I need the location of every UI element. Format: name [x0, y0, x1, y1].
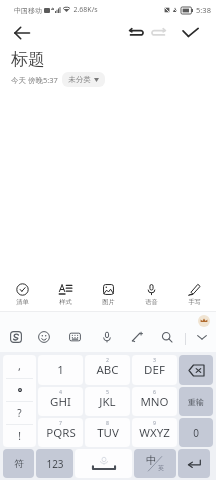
staticText: 样式	[59, 298, 72, 306]
staticText: JKL	[99, 394, 116, 410]
staticText: 9	[153, 419, 156, 426]
button[interactable]: Voice input	[96, 326, 118, 348]
button[interactable]: 中	[134, 449, 176, 478]
button[interactable]: Search	[156, 326, 178, 348]
button[interactable]: ,	[3, 355, 36, 378]
staticText: 重输	[188, 397, 204, 407]
staticText: 5	[106, 388, 109, 395]
staticText: TUV	[97, 425, 119, 441]
staticText: 语音	[145, 298, 158, 306]
staticText: !	[18, 429, 21, 443]
button[interactable]: 清单	[0, 270, 44, 311]
staticText: ?	[17, 406, 22, 420]
button[interactable]: 9	[132, 418, 177, 447]
staticText: 5:38	[196, 5, 211, 15]
button[interactable]: 123	[36, 449, 73, 478]
button[interactable]: Sogou input	[5, 326, 27, 348]
staticText: DEF	[144, 362, 165, 378]
staticText: 7	[59, 419, 62, 426]
button[interactable]	[179, 355, 213, 385]
staticText: ABC	[96, 362, 119, 378]
button[interactable]: 语音	[130, 270, 173, 311]
staticText: 8	[106, 419, 109, 426]
staticText: MNO	[140, 394, 169, 410]
button[interactable]: Emoji	[33, 326, 55, 348]
staticText: 图片	[102, 298, 115, 306]
button[interactable]: 3	[132, 355, 177, 385]
staticText: 0	[193, 426, 199, 440]
staticText: 标题	[11, 49, 45, 70]
staticText: 1	[57, 362, 64, 378]
button[interactable]: 5	[85, 387, 130, 416]
staticText: 123	[46, 457, 64, 471]
staticText: 英	[158, 464, 164, 472]
staticText: 手写	[188, 298, 201, 306]
button[interactable]: 手写	[173, 270, 216, 311]
button[interactable]: 样式	[44, 270, 87, 311]
button[interactable]: 1	[38, 355, 83, 385]
button[interactable]: Promotion	[198, 315, 210, 327]
button[interactable]: 0	[179, 418, 213, 447]
staticText: GHI	[50, 394, 71, 410]
button[interactable]: Keyboard layout	[64, 326, 86, 348]
button[interactable]: 7	[38, 418, 83, 447]
button[interactable]: 4	[38, 387, 83, 416]
staticText: 今天 傍晚5:37	[11, 75, 58, 85]
button[interactable]: Back	[8, 20, 36, 45]
button[interactable]: !	[3, 425, 36, 447]
button[interactable]: 符	[3, 449, 34, 478]
button[interactable]	[178, 449, 210, 478]
button[interactable]: 图片	[87, 270, 130, 311]
button[interactable]: Redo	[147, 21, 171, 45]
button[interactable]: 未分类	[62, 72, 105, 87]
staticText: 3	[153, 356, 156, 363]
staticText: 中	[146, 454, 157, 467]
staticText: ,	[18, 358, 21, 373]
button[interactable]: Undo	[124, 21, 148, 45]
staticText: 2.68K/s	[73, 5, 98, 15]
staticText: 符	[14, 458, 24, 470]
button[interactable]: ?	[3, 402, 36, 424]
staticText: PQRS	[46, 425, 76, 441]
staticText: WXYZ	[139, 425, 170, 441]
staticText: 2	[106, 356, 109, 363]
button[interactable]: Collapse keyboard	[191, 326, 213, 348]
staticText: 4	[59, 388, 62, 395]
button[interactable]: 6	[132, 387, 177, 416]
button[interactable]: Done	[178, 21, 202, 45]
button[interactable]: Handwriting	[126, 326, 148, 348]
button[interactable]: 8	[85, 418, 130, 447]
staticText: 6	[153, 388, 156, 395]
staticText: 中国移动	[14, 6, 42, 15]
staticText: 清单	[16, 298, 29, 306]
button[interactable]: 2	[85, 355, 130, 385]
button[interactable]: 重输	[179, 387, 213, 416]
staticText: 未分类	[68, 75, 91, 84]
button[interactable]	[75, 449, 132, 478]
button[interactable]	[3, 379, 36, 401]
